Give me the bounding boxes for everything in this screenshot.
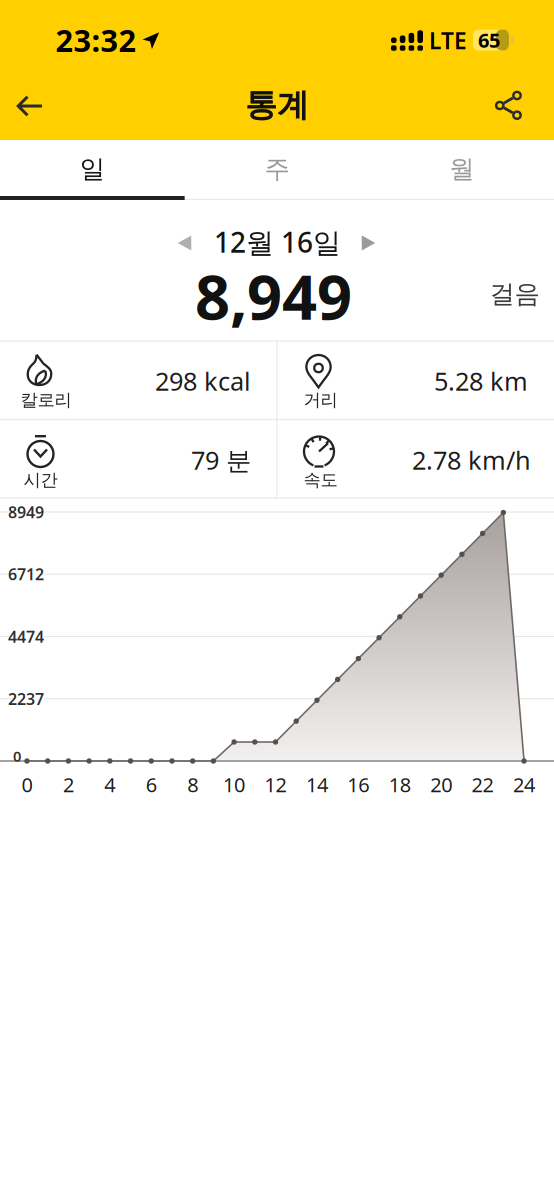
button[interactable]: Previous day bbox=[170, 227, 199, 258]
staticText: 0 bbox=[13, 746, 21, 766]
staticText: 6712 bbox=[8, 563, 44, 585]
staticText: 14 bbox=[306, 771, 328, 798]
staticText: 22 bbox=[472, 771, 494, 798]
staticText: 24 bbox=[513, 771, 535, 798]
staticText: 298 kcal bbox=[155, 364, 251, 398]
staticText: 월 bbox=[449, 153, 474, 184]
staticText: 일 bbox=[80, 153, 105, 184]
staticText: 속도 bbox=[303, 469, 337, 491]
staticText: 12 bbox=[264, 771, 286, 798]
staticText: 2 bbox=[63, 771, 74, 798]
button[interactable]: Next day bbox=[354, 227, 383, 258]
staticText: 6 bbox=[146, 771, 157, 798]
staticText: 8949 bbox=[8, 501, 44, 523]
staticText: 2.78 km/h bbox=[412, 443, 531, 477]
button[interactable]: Back bbox=[7, 85, 52, 127]
staticText: 거리 bbox=[303, 389, 337, 411]
button[interactable]: 주 bbox=[185, 141, 369, 197]
staticText: 칼로리 bbox=[20, 389, 71, 411]
staticText: 10 bbox=[223, 771, 245, 798]
staticText: 8,949 bbox=[195, 255, 352, 337]
staticText: 16 bbox=[347, 771, 369, 798]
staticText: 18 bbox=[389, 771, 411, 798]
staticText: 4 bbox=[104, 771, 115, 798]
staticText: 4474 bbox=[8, 626, 44, 647]
staticText: 걸음 bbox=[489, 278, 539, 309]
staticText: 주 bbox=[264, 153, 289, 184]
staticText: 통계 bbox=[245, 85, 309, 125]
staticText: 5.28 km bbox=[434, 364, 528, 398]
staticText: 20 bbox=[430, 771, 452, 798]
staticText: LTE bbox=[429, 25, 467, 55]
staticText: 12월 16일 bbox=[214, 223, 341, 261]
staticText: 시간 bbox=[23, 469, 57, 491]
staticText: 65 bbox=[478, 27, 500, 53]
staticText: 2237 bbox=[8, 688, 44, 709]
staticText: 8 bbox=[187, 771, 198, 798]
button[interactable]: Share bbox=[488, 81, 529, 130]
staticText: 79 분 bbox=[191, 443, 251, 477]
button[interactable]: 월 bbox=[369, 141, 554, 197]
button[interactable]: 일 bbox=[0, 141, 185, 197]
staticText: 23:32 bbox=[55, 20, 136, 60]
staticText: 0 bbox=[21, 771, 32, 798]
